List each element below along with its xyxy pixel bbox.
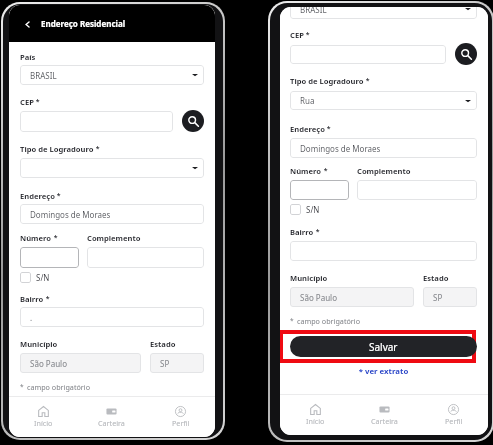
staticText: * [304, 30, 310, 40]
staticText: Complemento [357, 166, 411, 176]
staticText: Salvar [369, 340, 398, 354]
staticText: * [322, 166, 328, 176]
button[interactable]: Perfil [419, 401, 488, 429]
staticText: CEP [290, 30, 304, 40]
button[interactable]: Carteira [350, 401, 419, 429]
button[interactable] [20, 158, 204, 178]
staticText: * [44, 294, 50, 304]
button[interactable]: Buscar CEP [455, 43, 477, 65]
staticText: * [94, 144, 100, 154]
staticText: Município [20, 339, 58, 349]
staticText: Rua [300, 95, 315, 106]
staticText: Bairro [290, 227, 314, 237]
button[interactable]: Rua [290, 91, 477, 110]
staticText: Domingos de Moraes [300, 143, 381, 154]
button[interactable]: São Paulo [290, 287, 414, 307]
staticText: País [20, 52, 36, 62]
staticText: Carteira [98, 418, 125, 428]
button[interactable] [290, 45, 446, 64]
staticText: * [55, 191, 61, 201]
staticText: Perfil [172, 418, 190, 428]
button[interactable] [290, 241, 477, 261]
button[interactable]: * ver extrato [290, 366, 477, 377]
button[interactable] [87, 247, 204, 268]
staticText: Carteira [371, 416, 398, 426]
button[interactable]: SP [423, 287, 477, 307]
button[interactable]: Início [280, 401, 350, 429]
staticText: Endereço [20, 191, 55, 201]
button[interactable]: SP [150, 353, 204, 373]
button[interactable] [357, 180, 477, 200]
staticText: SP [160, 358, 170, 369]
button[interactable]: Perfil [146, 403, 215, 431]
staticText: Início [306, 416, 325, 426]
button[interactable]: Voltar [20, 17, 34, 31]
staticText: Bairro [20, 294, 44, 304]
staticText: Início [34, 418, 53, 428]
staticText: São Paulo [30, 358, 67, 369]
staticText: * [290, 316, 294, 325]
staticText: Número [290, 166, 322, 176]
staticText: S/N [36, 272, 50, 283]
staticText: campo obrigatório [27, 382, 90, 392]
staticText: Tipo de Logradouro [20, 144, 94, 154]
button[interactable]: S/N [290, 204, 320, 215]
button[interactable]: Domingos de Moraes [290, 138, 477, 158]
staticText: São Paulo [300, 292, 337, 303]
staticText: Tipo de Logradouro [290, 76, 364, 86]
button[interactable]: Domingos de Moraes [20, 204, 204, 224]
button[interactable]: BRASIL [290, 7, 477, 19]
staticText: . [30, 312, 33, 323]
button[interactable]: S/N [20, 272, 50, 283]
staticText: * [325, 124, 331, 134]
staticText: Domingos de Moraes [30, 209, 111, 220]
staticText: Endereço Residencial [41, 18, 126, 29]
staticText: * [34, 97, 40, 107]
staticText: Perfil [445, 416, 463, 426]
button[interactable] [20, 247, 79, 268]
staticText: Número [20, 233, 52, 243]
button[interactable] [20, 111, 173, 132]
staticText: * [52, 233, 58, 243]
button[interactable]: Salvar [290, 336, 477, 357]
staticText: * [314, 227, 320, 237]
button[interactable]: . [20, 307, 204, 327]
button[interactable] [290, 180, 349, 200]
staticText: Município [290, 273, 328, 283]
staticText: Complemento [87, 233, 141, 243]
staticText: * [20, 382, 24, 391]
staticText: Estado [150, 339, 176, 349]
button[interactable]: BRASIL [20, 65, 204, 85]
button[interactable]: Buscar CEP [182, 110, 204, 132]
staticText: Estado [423, 273, 449, 283]
staticText: * [364, 76, 370, 86]
button[interactable]: São Paulo [20, 353, 141, 373]
staticText: SP [433, 292, 443, 303]
button[interactable]: Carteira [77, 403, 146, 431]
staticText: campo obrigatório [297, 316, 360, 326]
staticText: Endereço [290, 124, 325, 134]
staticText: S/N [306, 204, 320, 215]
staticText: CEP [20, 97, 34, 107]
staticText: BRASIL [30, 70, 57, 81]
button[interactable]: Início [9, 403, 77, 431]
staticText: BRASIL [300, 7, 327, 15]
